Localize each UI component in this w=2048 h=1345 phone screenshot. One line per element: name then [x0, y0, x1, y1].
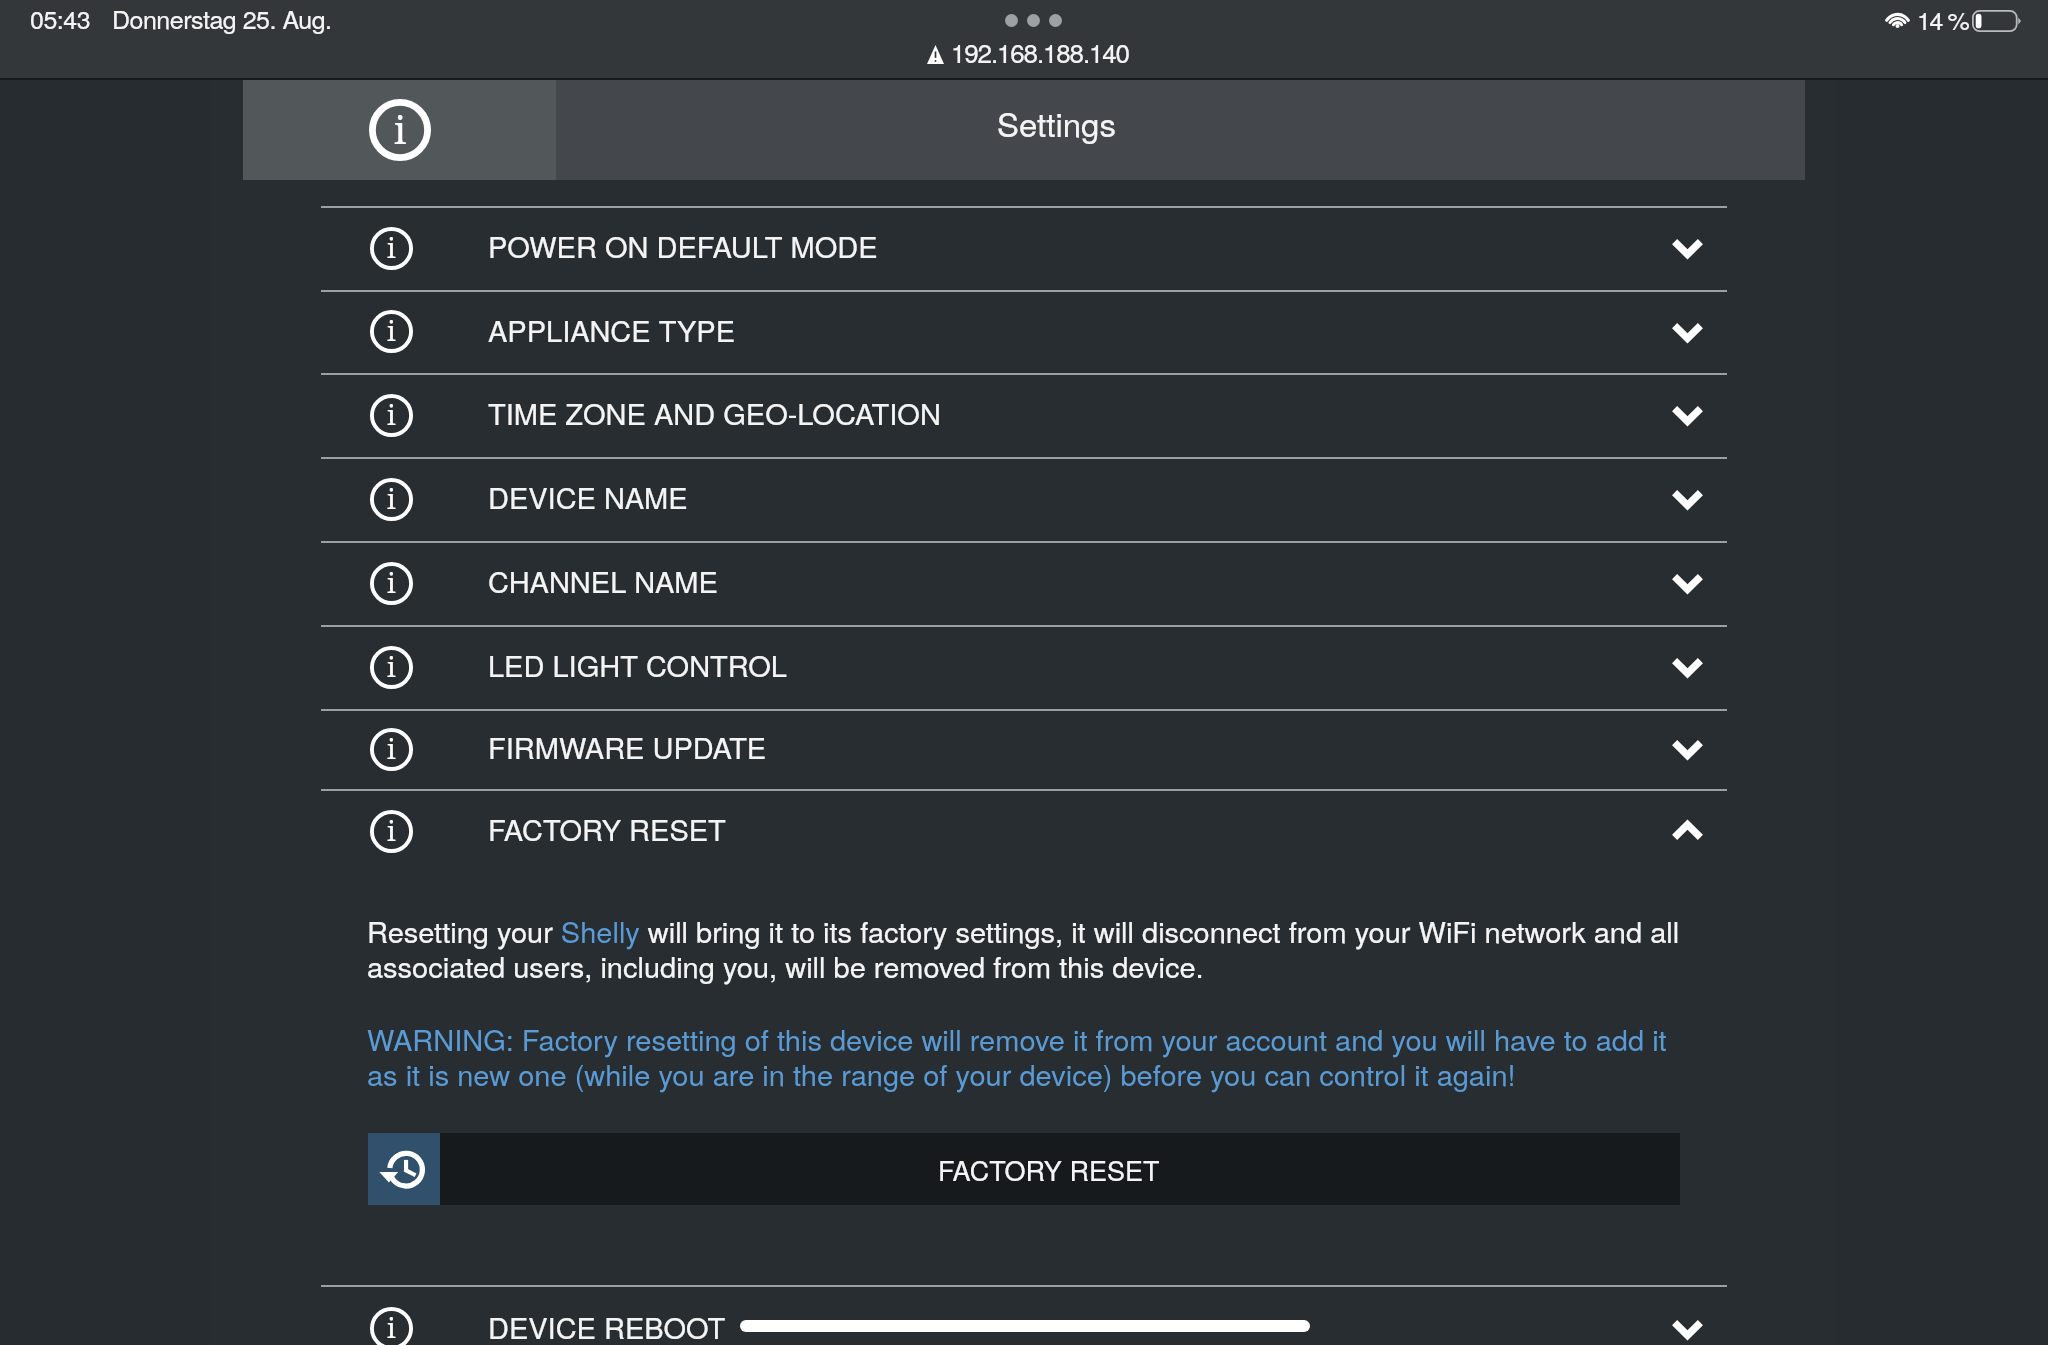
staticText: i [387, 229, 396, 266]
button[interactable]: About CHANNEL NAME [321, 541, 1727, 625]
staticText: FACTORY RESET [488, 808, 726, 850]
button[interactable]: About FACTORY RESET [321, 789, 1727, 873]
button[interactable]: About FACTORY RESET [370, 810, 413, 853]
staticText: i [387, 564, 396, 601]
button[interactable]: About DEVICE NAME [370, 478, 413, 521]
button[interactable]: FACTORY RESET [368, 1133, 1680, 1205]
button[interactable]: About APPLIANCE TYPE [370, 310, 413, 353]
staticText: WARNING: Factory resetting of this devic… [367, 1023, 1697, 1093]
button[interactable]: About FIRMWARE UPDATE [370, 728, 413, 771]
button[interactable]: Expand TIME ZONE AND GEO-LOCATION [1671, 405, 1704, 425]
staticText: Settings [997, 99, 1116, 146]
staticText: CHANNEL NAME [488, 560, 718, 602]
staticText: Resetting your Shelly will bring it to i… [367, 915, 1697, 985]
staticText: i [387, 312, 396, 349]
button[interactable]: Expand POWER ON DEFAULT MODE [1671, 238, 1704, 258]
button[interactable]: About POWER ON DEFAULT MODE [321, 206, 1727, 290]
staticText: DEVICE REBOOT [488, 1306, 726, 1345]
button[interactable]: Expand DEVICE REBOOT [1671, 1319, 1704, 1339]
staticText: i [394, 103, 407, 155]
button[interactable]: Expand DEVICE NAME [1671, 489, 1704, 509]
staticText: Donnerstag 25. Aug. [112, 0, 332, 36]
button[interactable]: About APPLIANCE TYPE [321, 290, 1727, 373]
staticText: 14 % [1917, 1, 1969, 37]
button[interactable]: Settings [556, 80, 1805, 180]
staticText: FIRMWARE UPDATE [488, 726, 767, 768]
staticText: i [387, 480, 396, 517]
staticText: LED LIGHT CONTROL [488, 644, 787, 686]
button[interactable]: Expand APPLIANCE TYPE [1671, 322, 1704, 342]
button[interactable]: About POWER ON DEFAULT MODE [370, 227, 413, 270]
button[interactable]: About DEVICE REBOOT [321, 1287, 1727, 1345]
staticText: 05:43 [30, 0, 91, 36]
button[interactable]: About LED LIGHT CONTROL [321, 625, 1727, 709]
staticText: APPLIANCE TYPE [488, 309, 736, 351]
button[interactable]: About TIME ZONE AND GEO-LOCATION [321, 373, 1727, 457]
staticText: FACTORY RESET [938, 1150, 1160, 1189]
staticText: i [387, 812, 396, 849]
staticText: DEVICE NAME [488, 476, 688, 518]
button[interactable]: Expand CHANNEL NAME [1671, 573, 1704, 593]
staticText: i [387, 1309, 396, 1345]
staticText: POWER ON DEFAULT MODE [488, 225, 878, 267]
button[interactable]: About DEVICE NAME [321, 457, 1727, 541]
button[interactable]: About CHANNEL NAME [370, 562, 413, 605]
button[interactable]: About FIRMWARE UPDATE [321, 709, 1727, 789]
button[interactable]: Collapse FACTORY RESET [1671, 821, 1704, 841]
button[interactable]: About LED LIGHT CONTROL [370, 646, 413, 689]
button[interactable]: About TIME ZONE AND GEO-LOCATION [370, 394, 413, 437]
staticText: i [387, 648, 396, 685]
staticText: TIME ZONE AND GEO-LOCATION [488, 392, 941, 434]
button[interactable]: Device info [243, 80, 556, 180]
staticText: i [387, 396, 396, 433]
staticText: i [387, 730, 396, 767]
button[interactable]: Expand LED LIGHT CONTROL [1671, 657, 1704, 677]
button[interactable]: About DEVICE REBOOT [370, 1307, 413, 1345]
button[interactable]: Expand FIRMWARE UPDATE [1671, 739, 1704, 759]
staticText: 192.168.188.140 [951, 33, 1129, 70]
